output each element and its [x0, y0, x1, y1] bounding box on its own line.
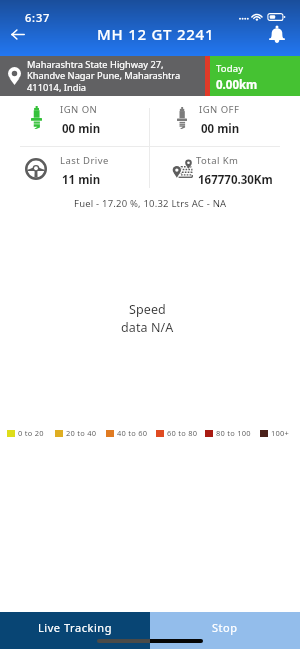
button[interactable]: Today — [210, 56, 300, 96]
button[interactable]: Last Drive — [0, 147, 149, 192]
staticText: Last Drive — [60, 154, 109, 167]
staticText: 11 min — [62, 172, 101, 188]
staticText: Stop — [212, 620, 238, 635]
button[interactable]: Stop — [150, 612, 300, 649]
staticText: Today — [216, 62, 244, 75]
staticText: 00 min — [62, 121, 101, 137]
staticText: 0.00km — [216, 77, 258, 93]
staticText: 40 to 60 — [117, 428, 148, 438]
button[interactable]: Live Tracking — [0, 612, 150, 649]
staticText: 60 to 80 — [167, 428, 198, 438]
staticText: Total Km — [196, 154, 239, 167]
staticText: 20 to 40 — [66, 428, 97, 438]
staticText: IGN OFF — [199, 103, 240, 116]
button[interactable]: Back — [5, 22, 31, 47]
staticText: Maharashtra State Highway 27, Khandve Na… — [27, 58, 200, 94]
staticText: Fuel - 17.20 %, 10.32 Ltrs AC - NA — [74, 197, 227, 210]
staticText: 80 to 100 — [216, 428, 251, 438]
button[interactable]: Maharashtra State Highway 27, Khandve Na… — [0, 56, 205, 96]
button[interactable]: Notifications — [265, 22, 288, 45]
staticText: MH 12 GT 2241 — [97, 24, 215, 44]
staticText: 167770.30Km — [198, 172, 273, 188]
button[interactable]: IGN ON — [0, 96, 149, 146]
staticText: 0 to 20 — [18, 428, 44, 438]
staticText: 6:37 — [25, 10, 51, 25]
button[interactable]: Total Km — [150, 147, 300, 192]
staticText: Live Tracking — [38, 620, 113, 635]
staticText: 00 min — [201, 121, 240, 137]
staticText: Speed — [129, 301, 166, 318]
staticText: IGN ON — [60, 103, 98, 116]
staticText: 100+ — [271, 428, 290, 438]
button[interactable]: IGN OFF — [150, 96, 300, 146]
staticText: data N/A — [121, 319, 174, 336]
